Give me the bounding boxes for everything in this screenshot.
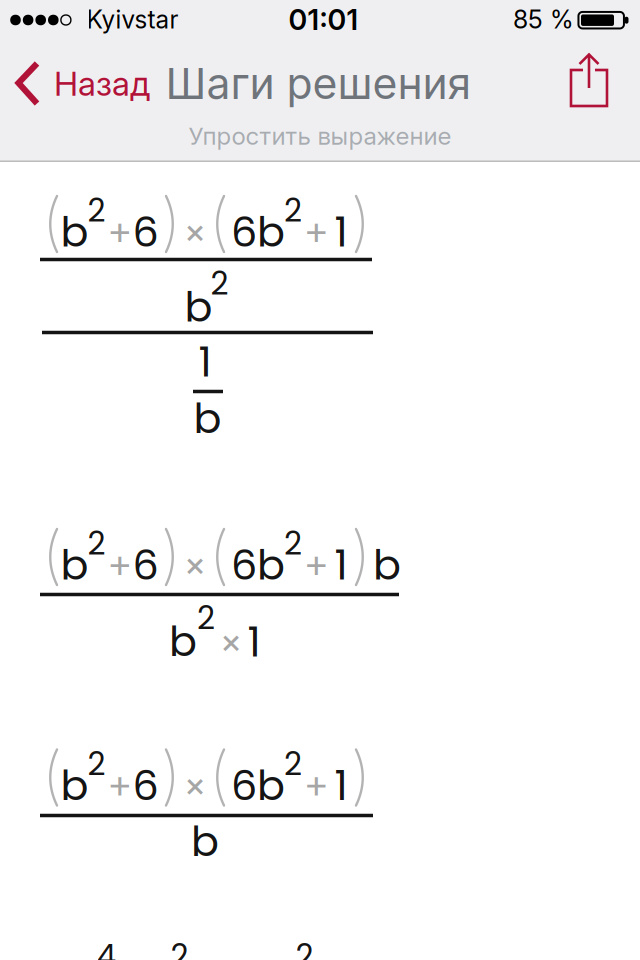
staticText: 2 (284, 742, 302, 786)
staticText: + (304, 208, 329, 259)
button[interactable]: Share (569, 52, 609, 108)
staticText: 2 (295, 934, 313, 960)
staticText: × (183, 542, 206, 592)
staticText: b (257, 203, 285, 261)
staticText: 1 (334, 757, 347, 814)
staticText: + (304, 762, 329, 812)
staticText: b (184, 278, 212, 336)
staticText: 2 (87, 522, 105, 565)
staticText: + (107, 541, 132, 592)
staticText: 6 (132, 536, 158, 594)
staticText: b (193, 390, 221, 447)
staticText: × (183, 762, 206, 813)
staticText: b (60, 757, 88, 814)
staticText: × (183, 209, 206, 259)
staticText: 2 (284, 522, 302, 565)
staticText: 2 (210, 262, 228, 305)
staticText: b (257, 757, 285, 814)
staticText: b (373, 536, 401, 594)
staticText: 6 (231, 536, 257, 594)
staticText: b (169, 613, 197, 670)
staticText: 1 (198, 333, 211, 391)
staticText: Назад (54, 63, 150, 104)
staticText: 01:01 (288, 2, 358, 37)
staticText: Упростить выражение (188, 121, 451, 151)
staticText: 2 (284, 189, 302, 232)
staticText: b (60, 203, 88, 261)
staticText: b (191, 813, 219, 870)
staticText: 85 % (513, 4, 574, 35)
staticText: 6 (231, 203, 257, 261)
staticText: 1 (334, 536, 347, 594)
staticText: × (219, 619, 242, 669)
staticText: 6 (231, 757, 257, 814)
staticText: Kyivstar (86, 5, 178, 34)
staticText: b (257, 536, 285, 594)
staticText: + (107, 762, 132, 812)
staticText: 4 (96, 934, 116, 960)
staticText: 1 (247, 613, 260, 671)
staticText: 6 (132, 203, 158, 261)
staticText: 2 (197, 596, 215, 640)
staticText: b (60, 536, 88, 594)
staticText: 2 (87, 189, 105, 232)
staticText: 2 (170, 934, 188, 960)
staticText: 2 (87, 742, 105, 786)
staticText: + (304, 541, 329, 592)
staticText: + (107, 208, 132, 259)
staticText: 1 (334, 203, 347, 261)
button[interactable]: Назад (14, 61, 150, 106)
staticText: Шаги решения (165, 58, 471, 109)
staticText: 6 (132, 757, 158, 814)
